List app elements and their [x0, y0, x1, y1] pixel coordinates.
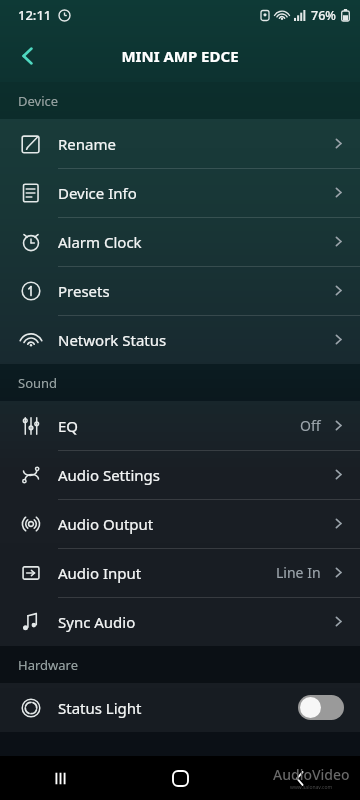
staticText: AudioVideo	[273, 765, 350, 784]
button[interactable]: Alarm Clock	[0, 217, 360, 266]
button[interactable]: Network Status	[0, 315, 360, 364]
staticText: EQ	[58, 416, 79, 436]
button[interactable]: Back	[6, 34, 50, 78]
staticText: Sync Audio	[58, 612, 136, 632]
button[interactable]: Presets	[0, 266, 360, 315]
staticText: Sound	[18, 374, 58, 392]
staticText: Audio Settings	[58, 465, 161, 485]
staticText: 76%	[311, 7, 336, 24]
staticText: Rename	[58, 134, 116, 154]
button[interactable]: Home	[120, 756, 240, 800]
staticText: Off	[300, 416, 321, 435]
staticText: Alarm Clock	[58, 232, 142, 252]
button[interactable]: Audio Settings	[0, 450, 360, 499]
staticText: Audio Input	[58, 563, 142, 583]
staticText: Audio Output	[58, 514, 154, 534]
button[interactable]: Device Info	[0, 168, 360, 217]
staticText: Status Light	[58, 698, 142, 718]
staticText: Device Info	[58, 183, 137, 203]
button[interactable]: Audio Output	[0, 499, 360, 548]
staticText: Network Status	[58, 330, 167, 350]
button[interactable]: Status Light	[0, 683, 360, 732]
staticText: 12:11	[18, 6, 52, 24]
staticText: Line In	[276, 563, 321, 582]
button[interactable]: Audio Input	[0, 548, 360, 597]
button[interactable]: Recents	[0, 756, 120, 800]
staticText: MINI AMP EDCE	[121, 46, 239, 66]
staticText: Device	[18, 92, 59, 110]
button[interactable]: Sync Audio	[0, 597, 360, 646]
staticText: www.salonav.com	[290, 784, 333, 791]
staticText: Presets	[58, 281, 110, 301]
button[interactable]: EQ	[0, 401, 360, 450]
button[interactable]: Back	[240, 756, 360, 800]
staticText: Hardware	[18, 656, 78, 674]
button[interactable]: Rename	[0, 119, 360, 168]
